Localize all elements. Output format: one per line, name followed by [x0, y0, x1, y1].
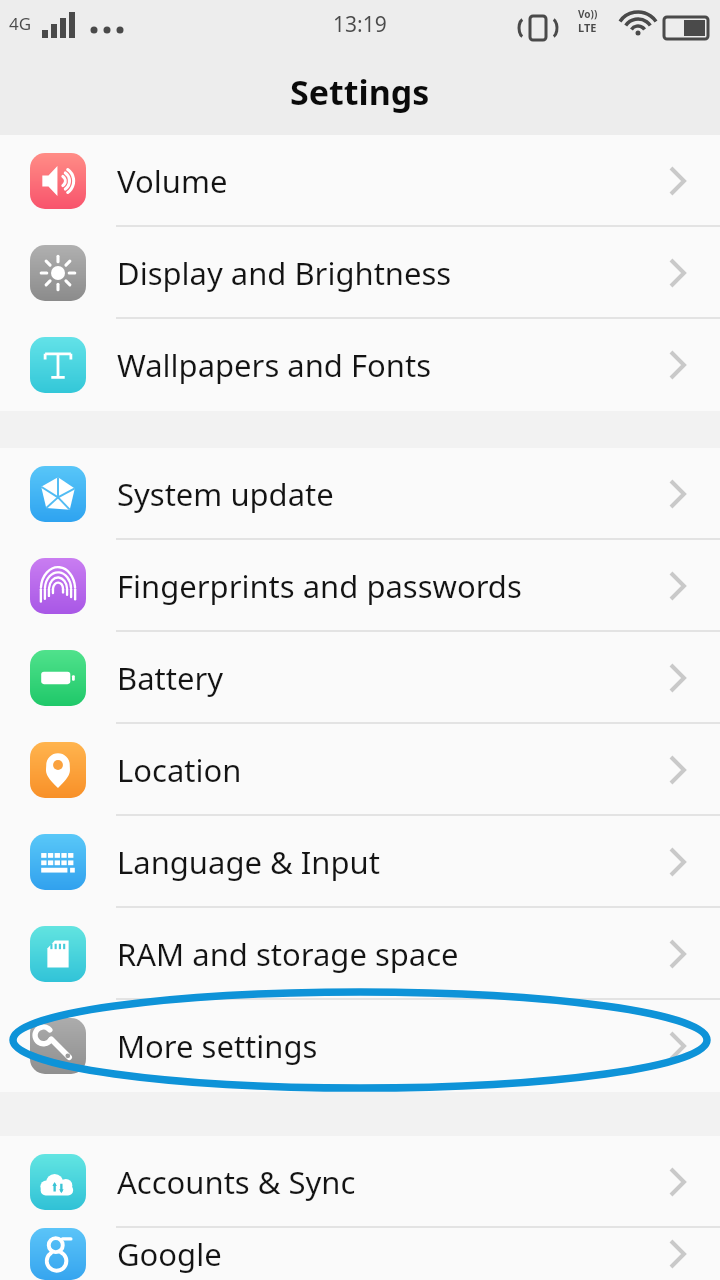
- button[interactable]: Accounts & Sync: [0, 1136, 720, 1228]
- button[interactable]: Google: [0, 1228, 720, 1280]
- staticText: Wallpapers and Fonts: [117, 344, 432, 386]
- staticText: Language & Input: [117, 841, 380, 883]
- staticText: Vo)): [578, 7, 598, 21]
- staticText: Settings: [290, 69, 430, 115]
- button[interactable]: Battery: [0, 632, 720, 724]
- staticText: RAM and storage space: [117, 933, 459, 975]
- other: Wallpapers and Fonts: [30, 337, 86, 393]
- other: RAM and storage space: [30, 926, 86, 982]
- other: System update: [30, 466, 86, 522]
- staticText: Fingerprints and passwords: [117, 565, 522, 607]
- button[interactable]: More settings: [0, 1000, 720, 1092]
- other: Language & Input: [30, 834, 86, 890]
- staticText: Volume: [117, 160, 228, 202]
- staticText: More settings: [117, 1025, 318, 1067]
- button[interactable]: Language & Input: [0, 816, 720, 908]
- other: More settings: [30, 1018, 86, 1074]
- staticText: System update: [117, 473, 334, 515]
- button[interactable]: Volume: [0, 135, 720, 227]
- staticText: 13:19: [333, 10, 387, 39]
- button[interactable]: System update: [0, 448, 720, 540]
- button[interactable]: Location: [0, 724, 720, 816]
- other: Accounts & Sync: [30, 1154, 86, 1210]
- button[interactable]: Wallpapers and Fonts: [0, 319, 720, 411]
- other: Fingerprints and passwords: [30, 558, 86, 614]
- staticText: Google: [117, 1233, 222, 1275]
- button[interactable]: RAM and storage space: [0, 908, 720, 1000]
- staticText: 4G: [9, 12, 32, 35]
- other: Battery: [30, 650, 86, 706]
- staticText: Location: [117, 749, 242, 791]
- other: Location: [30, 742, 86, 798]
- button[interactable]: Display and Brightness: [0, 227, 720, 319]
- staticText: Display and Brightness: [117, 252, 452, 294]
- other: Google: [30, 1228, 86, 1280]
- staticText: Accounts & Sync: [117, 1161, 356, 1203]
- staticText: LTE: [578, 20, 597, 35]
- button[interactable]: Fingerprints and passwords: [0, 540, 720, 632]
- other: Volume: [30, 153, 86, 209]
- other: Display and Brightness: [30, 245, 86, 301]
- staticText: Battery: [117, 657, 224, 699]
